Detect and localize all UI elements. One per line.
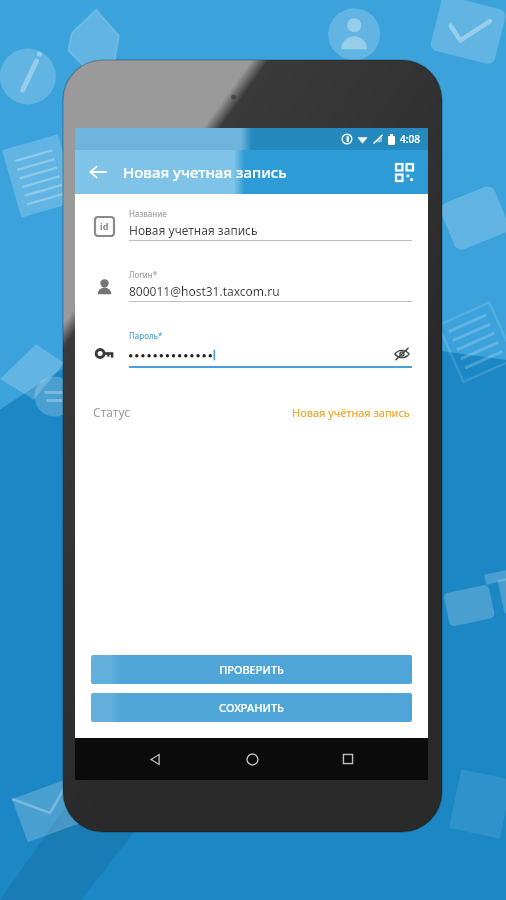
staticText: ПРОВЕРИТЬ	[219, 662, 284, 677]
staticText: Логин*	[129, 269, 158, 280]
button[interactable]: Логин*	[91, 269, 412, 302]
button[interactable]: Назад	[138, 742, 172, 776]
staticText: Пароль*	[129, 330, 163, 341]
button[interactable]: Сканировать QR-код	[388, 156, 420, 188]
staticText: id	[100, 220, 109, 232]
staticText: Новая учетная запись	[123, 162, 287, 182]
button[interactable]: Пароль*	[91, 330, 412, 368]
staticText: Статус	[93, 404, 131, 420]
button[interactable]: id	[91, 208, 412, 241]
button[interactable]: Недавние приложения	[331, 742, 365, 776]
button[interactable]: СОХРАНИТЬ	[91, 693, 412, 722]
button[interactable]: ПРОВЕРИТЬ	[91, 655, 412, 684]
staticText: 800011@host31.taxcom.ru	[129, 283, 412, 299]
button[interactable]: Главный экран	[235, 742, 269, 776]
staticText: 4:08	[400, 132, 420, 146]
staticText: СОХРАНИТЬ	[219, 700, 284, 715]
staticText: Новая учетная запись	[129, 222, 412, 238]
button[interactable]: Статус	[93, 404, 410, 420]
button[interactable]: Назад	[81, 155, 115, 189]
button[interactable]: Показать пароль	[392, 344, 412, 364]
staticText: Новая учётная запись	[292, 405, 410, 420]
staticText: Название	[129, 208, 167, 219]
